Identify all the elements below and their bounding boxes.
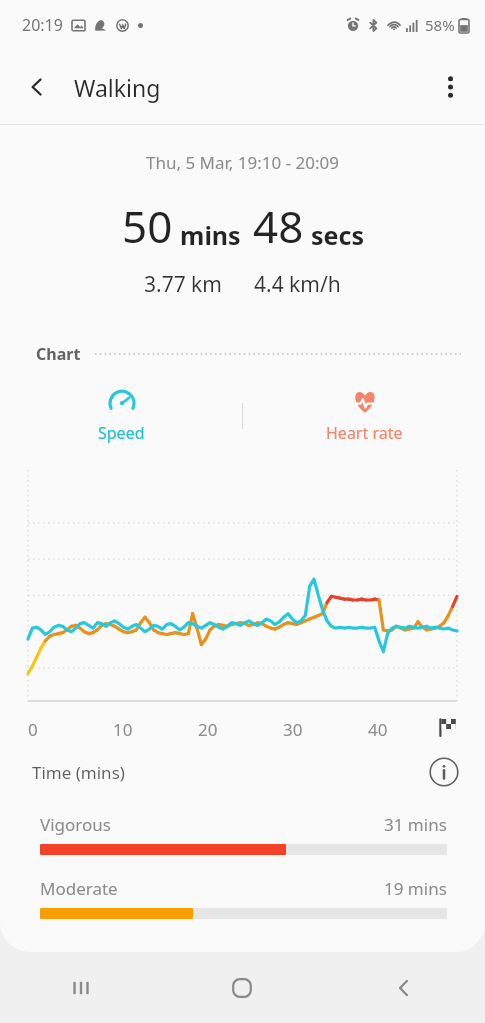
staticText: Moderate	[40, 877, 118, 900]
staticText: Chart	[36, 343, 81, 365]
button[interactable]: Speed	[80, 383, 163, 448]
staticText: 48	[253, 196, 304, 256]
staticText: 20	[198, 718, 218, 741]
button[interactable]: Heart rate	[308, 383, 421, 448]
staticText: 30	[283, 718, 303, 741]
button[interactable]: Information	[427, 755, 461, 789]
staticText: 58%	[425, 15, 455, 35]
button[interactable]: Back	[323, 952, 485, 1023]
staticText: Vigorous	[40, 813, 111, 836]
staticText: 0	[28, 718, 38, 741]
staticText: Heart rate	[326, 422, 403, 444]
staticText: 40	[368, 718, 388, 741]
staticText: Thu, 5 Mar, 19:10 - 20:09	[146, 151, 340, 174]
button[interactable]: Vigorous	[0, 813, 485, 855]
staticText: Speed	[98, 422, 145, 444]
staticText: 20:19	[22, 14, 63, 36]
button[interactable]: More options	[427, 64, 473, 110]
staticText: Walking	[74, 72, 161, 103]
staticText: mins	[180, 218, 241, 252]
button[interactable]: Home	[161, 952, 323, 1023]
staticText: 31 mins	[384, 813, 447, 836]
staticText: 4.4 km/h	[254, 270, 341, 299]
staticText: Time (mins)	[32, 761, 125, 784]
button[interactable]: Recent apps	[0, 952, 161, 1023]
staticText: 3.77 km	[144, 270, 222, 299]
staticText: secs	[311, 218, 364, 252]
staticText: 10	[113, 718, 133, 741]
button[interactable]: Back	[14, 64, 60, 110]
staticText: 50	[122, 196, 173, 256]
button[interactable]: Moderate	[0, 877, 485, 919]
staticText: 19 mins	[384, 877, 447, 900]
